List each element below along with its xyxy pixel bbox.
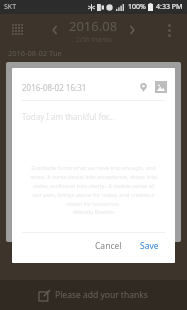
staticText: PM 2:47 xyxy=(12,66,37,75)
staticText: SKT xyxy=(4,2,17,12)
staticText: 2/56 thanks xyxy=(76,35,112,44)
staticText: -Melody Beattie- xyxy=(12,208,175,216)
staticText: Gratitude turns what we have into enough… xyxy=(28,164,159,207)
button[interactable]: More options xyxy=(157,18,181,42)
staticText: Save xyxy=(140,240,159,252)
button[interactable]: Next month xyxy=(122,20,142,40)
staticText: 4:33 PM xyxy=(156,2,183,12)
staticText: 2016.08 xyxy=(69,17,118,35)
staticText: Please add your thanks xyxy=(55,289,148,301)
staticText: 100% xyxy=(128,2,146,12)
staticText: Cancel xyxy=(95,240,122,252)
button[interactable]: PM 2:47 xyxy=(6,62,181,242)
button[interactable]: 2016.08 xyxy=(65,17,122,44)
button[interactable]: Add photo xyxy=(155,81,167,93)
button[interactable]: Add location xyxy=(136,80,150,94)
staticText: 2016-08-02 Tue xyxy=(8,48,62,58)
button[interactable]: Please add your thanks xyxy=(0,280,187,310)
button[interactable]: Cancel xyxy=(87,237,130,255)
button[interactable]: Today I am thankful for... xyxy=(22,111,115,122)
button[interactable]: Previous month xyxy=(45,20,65,40)
button[interactable]: Calendar xyxy=(6,18,30,42)
button[interactable]: 2016-08-02 16:31 xyxy=(22,82,87,93)
button[interactable]: Save xyxy=(132,237,167,255)
